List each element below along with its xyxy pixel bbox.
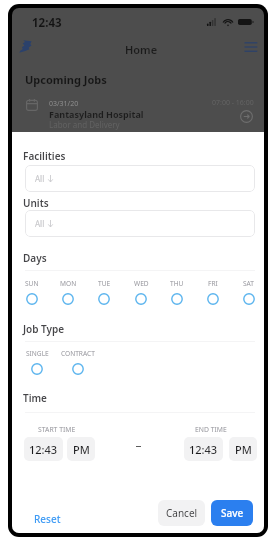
staticText: All [35, 218, 45, 229]
button[interactable]: 12:43 [184, 437, 223, 461]
staticText: Cancel [166, 506, 198, 520]
staticText: 12:43 [32, 15, 62, 31]
button[interactable]: TUE [89, 279, 119, 305]
staticText: Home [125, 42, 158, 57]
staticText: SINGLE [26, 349, 49, 358]
staticText: Reset [34, 512, 61, 526]
staticText: Fantasyland Hospital [49, 108, 144, 120]
staticText: SUN [25, 279, 39, 288]
staticText: Job Type [23, 322, 65, 336]
button[interactable]: SINGLE [19, 349, 55, 375]
staticText: START TIME [38, 425, 76, 434]
button[interactable]: WED [126, 279, 156, 305]
staticText: SAT [243, 279, 255, 288]
staticText: PM [73, 442, 90, 457]
staticText: THU [170, 279, 184, 288]
staticText: END TIME [195, 425, 227, 434]
button[interactable]: 12:43 [24, 437, 63, 461]
staticText: Labor and Delivery [49, 119, 120, 130]
button[interactable]: CONTRACT [60, 349, 96, 375]
button[interactable]: PM [67, 437, 95, 461]
button[interactable]: Cancel [158, 500, 205, 526]
staticText: FRI [208, 279, 218, 288]
staticText: Upcoming Jobs [25, 72, 107, 87]
staticText: Facilities [23, 149, 66, 163]
staticText: PM [235, 442, 252, 457]
staticText: Days [23, 251, 47, 265]
staticText: MON [60, 279, 77, 288]
button[interactable]: THU [162, 279, 192, 305]
staticText: Save [221, 506, 244, 520]
staticText: 07:00 - 16:00 [212, 98, 254, 108]
button[interactable]: All [25, 165, 255, 192]
staticText: Units [23, 196, 49, 210]
staticText: 12:43 [29, 442, 58, 457]
button[interactable]: Save [211, 500, 253, 526]
staticText: TUE [98, 279, 111, 288]
staticText: Time [23, 391, 47, 405]
button[interactable]: SUN [17, 279, 47, 305]
button[interactable]: All [25, 210, 255, 237]
staticText: 12:43 [189, 442, 218, 457]
button[interactable]: FRI [198, 279, 228, 305]
button[interactable]: SAT [234, 279, 264, 305]
button[interactable]: Open job details [240, 110, 253, 123]
staticText: WED [134, 279, 149, 288]
button[interactable]: Menu [240, 38, 260, 58]
staticText: 03/31/20 [49, 99, 79, 109]
button[interactable]: Reset [28, 506, 67, 532]
staticText: All [35, 173, 45, 184]
button[interactable]: PM [229, 437, 257, 461]
staticText: CONTRACT [61, 349, 95, 358]
button[interactable]: MON [53, 279, 83, 305]
